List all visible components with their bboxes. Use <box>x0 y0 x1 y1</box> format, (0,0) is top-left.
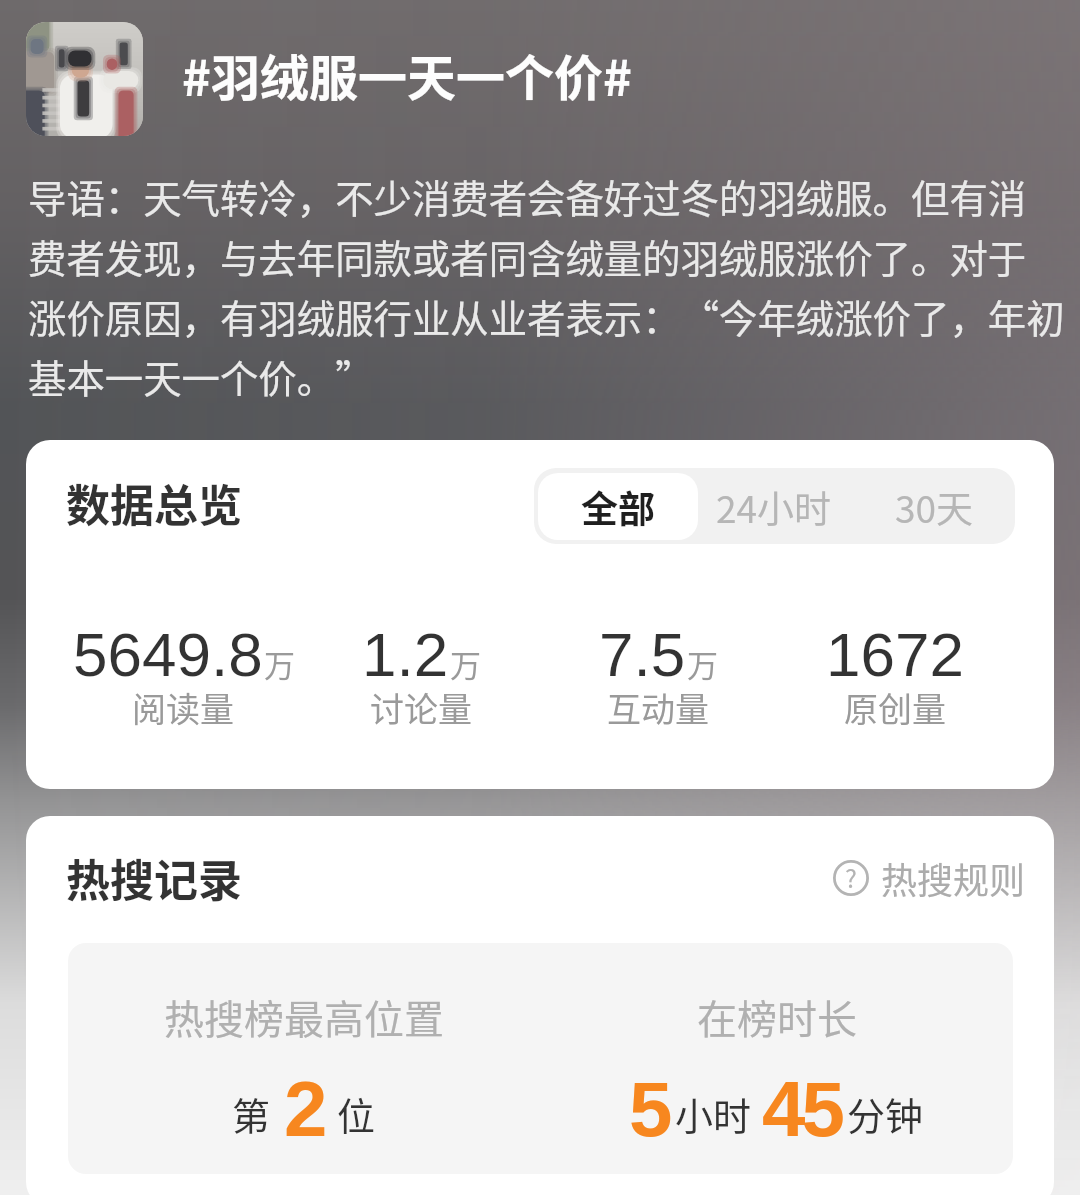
staticText: 讨论量 <box>370 683 472 732</box>
staticText: 数据总览 <box>66 471 242 535</box>
staticText: 热搜规则 <box>881 852 1026 904</box>
button[interactable]: 热搜榜最高位置 <box>68 943 540 1135</box>
staticText: #羽绒服一天一个价# <box>182 39 632 110</box>
staticText: ? <box>845 859 857 895</box>
button[interactable]: 24小时 <box>706 473 842 540</box>
button[interactable]: Topic cover photo <box>26 22 1078 136</box>
button[interactable]: 全部 <box>538 473 698 540</box>
staticText: 万 <box>450 641 481 686</box>
button[interactable]: 热搜规则 hot search rules <box>832 852 1026 904</box>
staticText: 万 <box>687 641 718 686</box>
staticText: 第 <box>232 1086 271 1141</box>
staticText: 2 <box>284 1065 324 1152</box>
staticText: 在榜时长 <box>697 988 857 1046</box>
staticText: 分钟 <box>847 1086 924 1141</box>
staticText: 导语：天气转冷，不少消费者会备好过冬的羽绒服。但有消 <box>28 168 1027 224</box>
staticText: 45 <box>762 1065 841 1152</box>
staticText: 涨价原因，有羽绒服行业从业者表示：“今年绒涨价了，年初 <box>28 288 1065 344</box>
staticText: 24小时 <box>716 480 832 534</box>
staticText: 全部 <box>581 480 655 534</box>
staticText: 小时 <box>675 1086 752 1141</box>
staticText: 1672 <box>826 620 964 689</box>
staticText: 热搜榜最高位置 <box>164 988 444 1046</box>
staticText: 互动量 <box>607 683 709 732</box>
staticText: 位 <box>337 1086 376 1141</box>
button[interactable]: 在榜时长 <box>540 943 1013 1135</box>
staticText: 费者发现，与去年同款或者同含绒量的羽绒服涨价了。对于 <box>28 228 1027 284</box>
button[interactable]: Topic cover photo <box>26 22 143 136</box>
staticText: 30天 <box>895 480 974 534</box>
staticText: 7.5 <box>599 620 686 689</box>
staticText: 基本一天一个价。” <box>28 348 374 404</box>
staticText: 原创量 <box>844 683 946 732</box>
staticText: 热搜记录 <box>66 846 242 910</box>
button[interactable]: 30天 <box>886 473 983 540</box>
staticText: 阅读量 <box>132 683 234 732</box>
staticText: 1.2 <box>362 620 449 689</box>
staticText: 5 <box>629 1065 669 1152</box>
staticText: 5649.8 <box>73 620 263 689</box>
staticText: 万 <box>264 641 295 686</box>
